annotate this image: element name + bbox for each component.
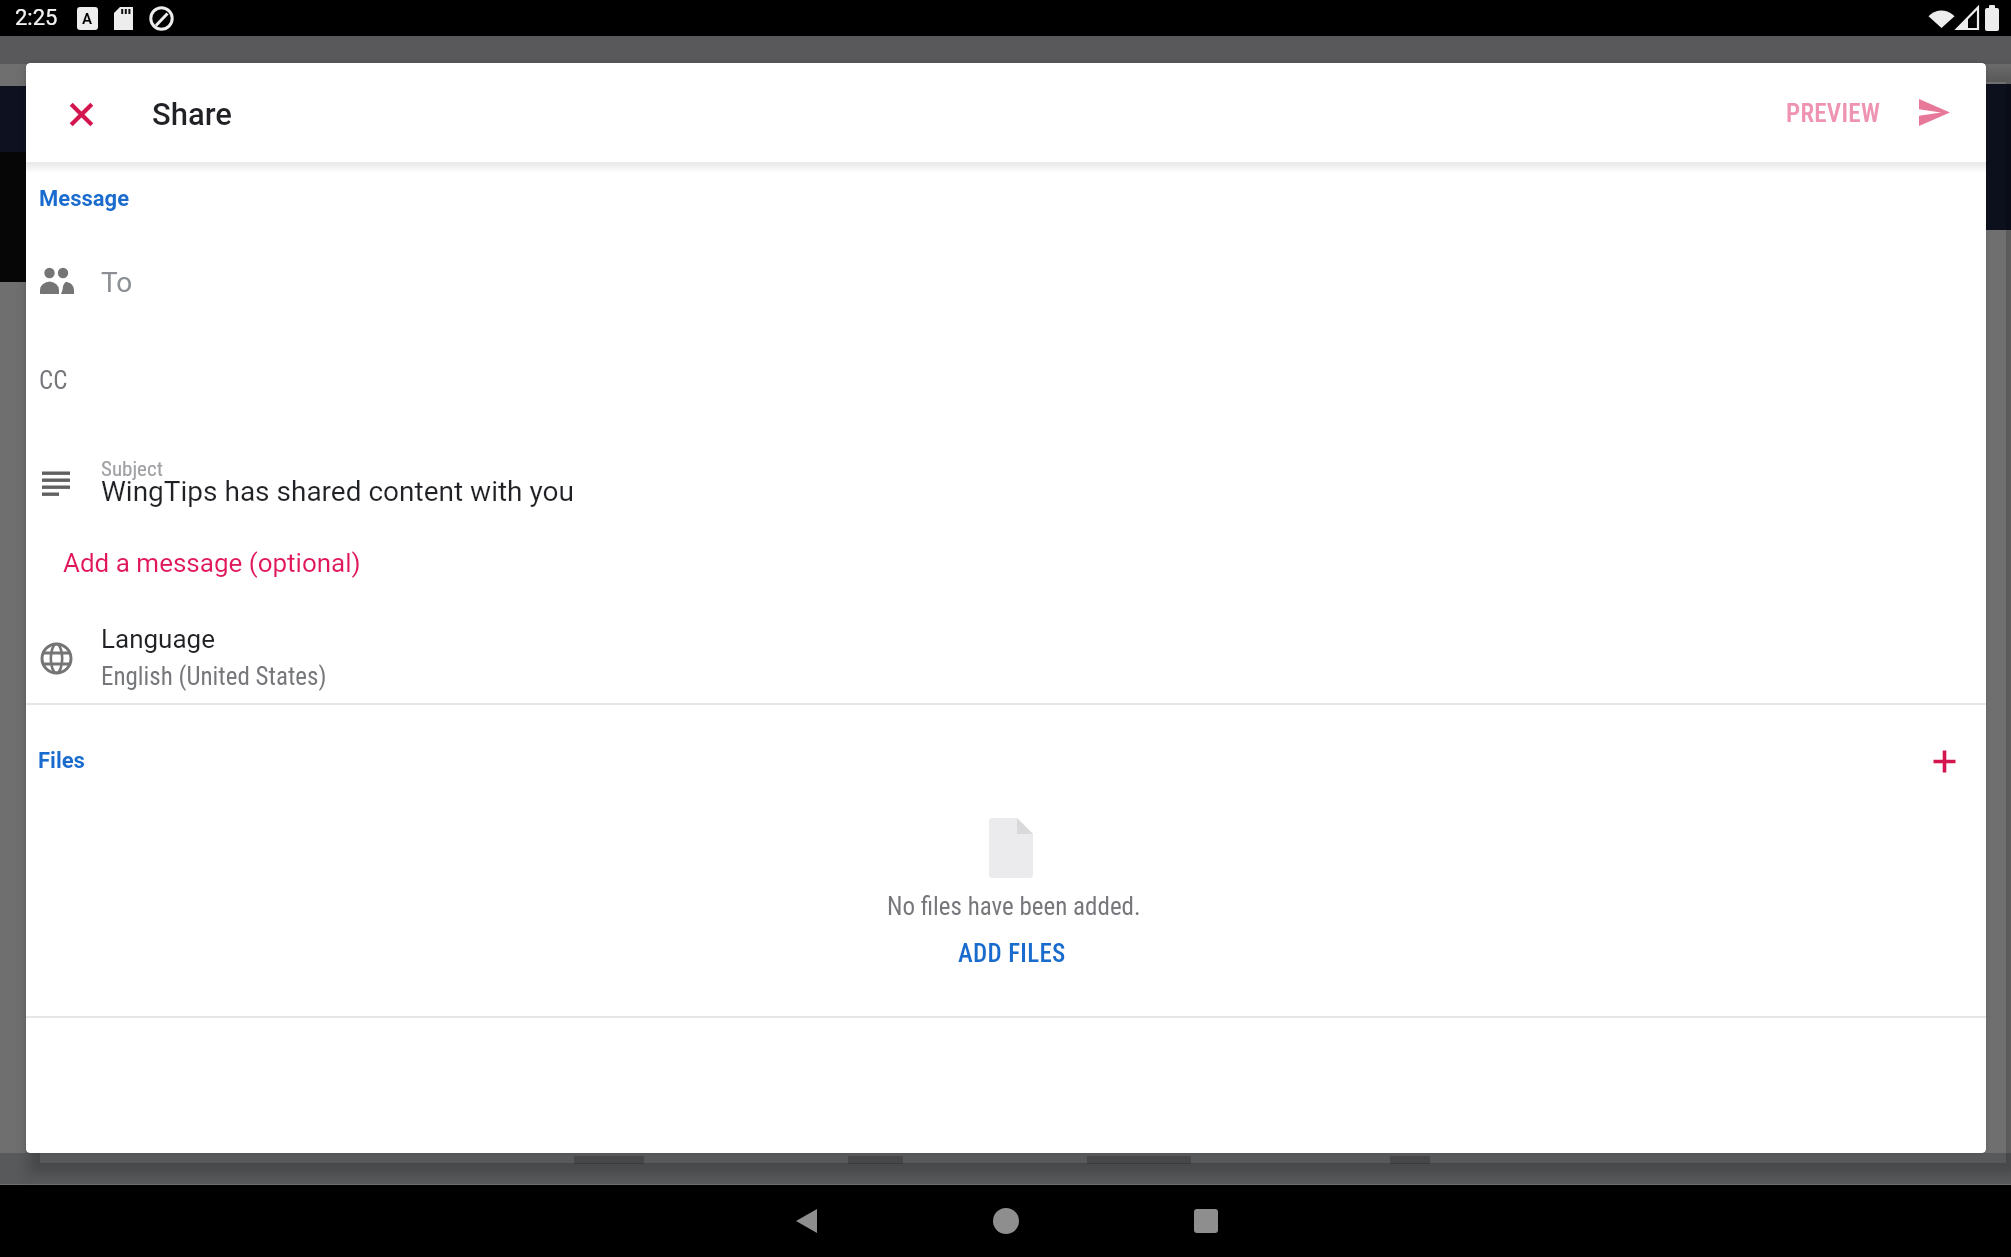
staticText: ADD FILES <box>958 939 1066 968</box>
button[interactable]: PREVIEW <box>1756 87 1911 139</box>
button[interactable]: ADD FILES <box>914 925 1110 981</box>
staticText: 2:25 <box>15 5 58 31</box>
button[interactable] <box>1924 741 1964 781</box>
button[interactable] <box>1194 1209 1218 1233</box>
staticText: Share <box>152 96 232 132</box>
button[interactable]: Language <box>26 608 1986 702</box>
button[interactable] <box>1919 99 1950 126</box>
staticText: Add a message (optional) <box>63 548 361 578</box>
staticText: Language <box>101 624 215 654</box>
button[interactable]: CC <box>38 355 438 401</box>
button[interactable]: To <box>100 253 1930 303</box>
button[interactable] <box>57 90 105 138</box>
staticText: To <box>101 266 133 299</box>
button[interactable] <box>993 1208 1019 1234</box>
staticText: CC <box>39 366 68 395</box>
staticText: English (United States) <box>101 662 327 691</box>
staticText: A <box>82 10 93 28</box>
staticText: Subject <box>101 457 163 482</box>
staticText: Message <box>39 186 130 212</box>
staticText: No files have been added. <box>887 892 1141 921</box>
staticText: WingTips has shared content with you <box>101 475 574 508</box>
button[interactable] <box>796 1209 817 1233</box>
staticText: PREVIEW <box>1786 99 1881 128</box>
staticText: Files <box>38 748 85 774</box>
button[interactable]: Add a message (optional) <box>63 538 563 584</box>
